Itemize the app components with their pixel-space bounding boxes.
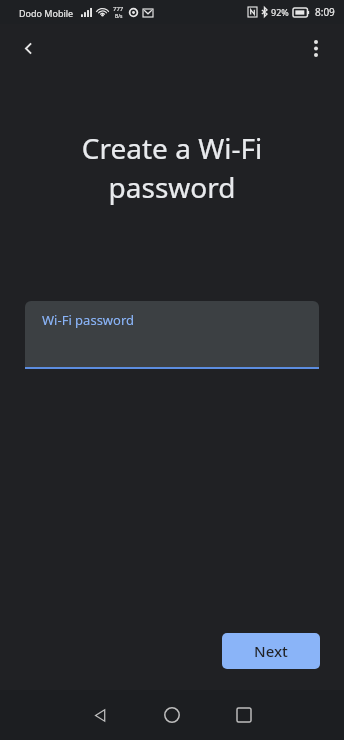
- button[interactable]: Next: [222, 633, 320, 669]
- staticText: Wi-Fi password: [42, 311, 135, 329]
- staticText: 777: [113, 5, 124, 13]
- staticText: Create a Wi-Fi password: [34, 129, 310, 206]
- button[interactable]: Back: [72, 690, 128, 740]
- staticText: 92%: [271, 6, 289, 18]
- button[interactable]: Back: [10, 30, 46, 66]
- button[interactable]: Wi-Fi password: [25, 301, 319, 369]
- staticText: Dodo Mobile: [19, 7, 74, 19]
- staticText: Next: [254, 641, 288, 661]
- staticText: 8:09: [315, 5, 335, 19]
- staticText: B/s: [115, 13, 123, 20]
- button[interactable]: More options: [298, 30, 334, 66]
- button[interactable]: Recent apps: [216, 690, 272, 740]
- button[interactable]: Home: [144, 690, 200, 740]
